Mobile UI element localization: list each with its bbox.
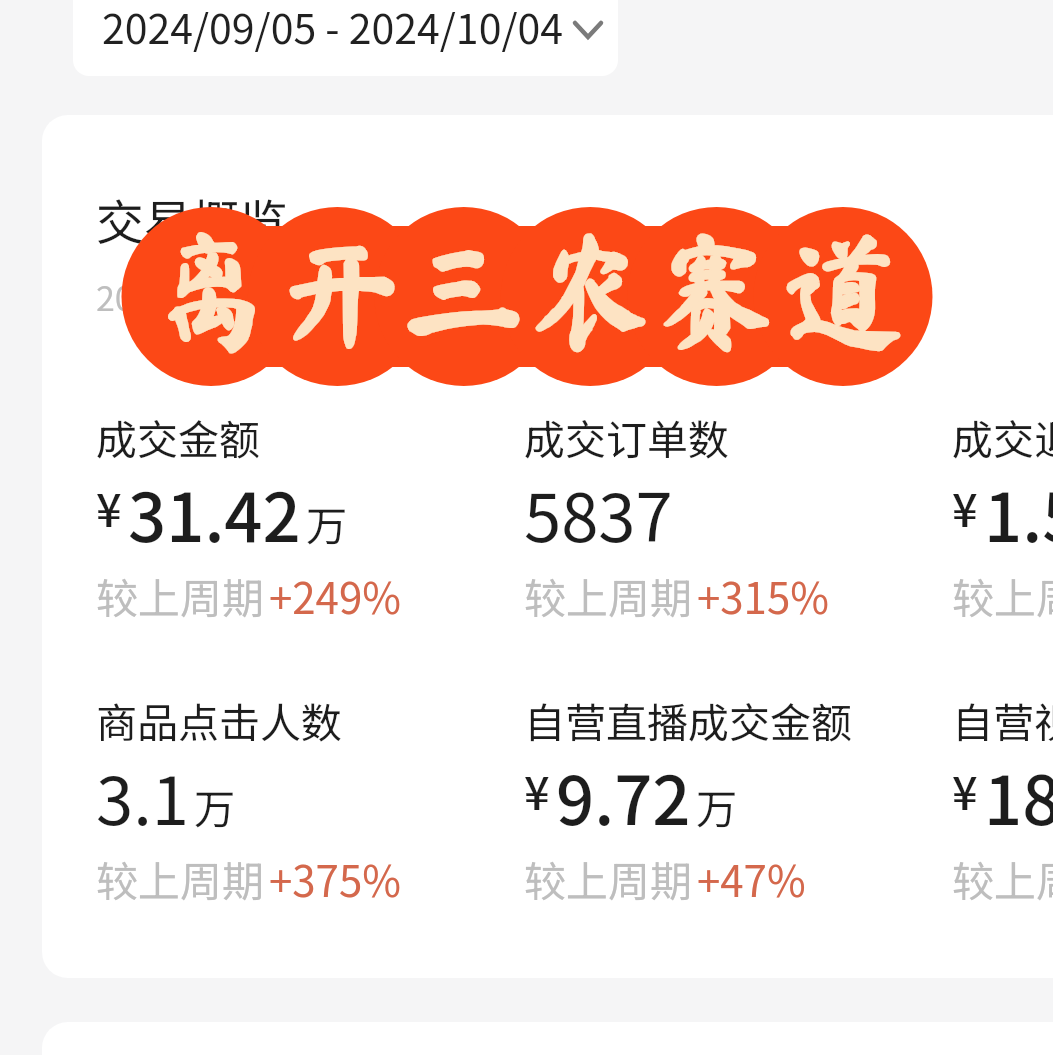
staticText: 5837 <box>524 464 673 561</box>
staticText: 3.1 <box>96 747 189 844</box>
staticText: 9.72 <box>556 747 691 844</box>
staticText: +47% <box>697 848 806 909</box>
staticText: 万 <box>696 776 737 835</box>
staticText: 31.42 <box>128 464 301 561</box>
button[interactable]: 自营视频成交金额 <box>952 690 1053 920</box>
staticText: 离 <box>149 227 274 352</box>
staticText: 成交订单数 <box>524 407 729 466</box>
staticText: ¥ <box>524 758 550 823</box>
staticText: 成交金额 <box>96 407 260 466</box>
staticText: 较上周期 <box>96 565 265 626</box>
staticText: 商品点击人数 <box>96 690 342 749</box>
staticText: 三 <box>401 227 526 352</box>
staticText: 离 <box>149 227 274 352</box>
staticText: ¥ <box>96 475 122 540</box>
staticText: 万 <box>306 493 347 552</box>
staticText: +375% <box>269 848 401 909</box>
button[interactable]: 成交金额 <box>96 407 496 637</box>
staticText: 开 <box>275 227 400 352</box>
staticText: 较上周期 <box>952 848 1053 909</box>
staticText: 较上周期 <box>96 848 265 909</box>
staticText: 三 <box>401 227 526 352</box>
button[interactable]: 自营直播成交金额 <box>524 690 924 920</box>
staticText: 农 <box>528 227 653 352</box>
button[interactable]: 成交退款金额 <box>952 407 1053 637</box>
button[interactable]: Select date range <box>73 0 618 76</box>
staticText: 18.2 <box>984 747 1053 844</box>
staticText: 道 <box>781 227 906 352</box>
staticText: 赛 <box>654 227 779 352</box>
button[interactable]: 商品点击人数 <box>96 690 496 920</box>
staticText: 较上周期 <box>524 848 693 909</box>
staticText: 1.53 <box>984 464 1053 561</box>
staticText: 道 <box>781 227 906 352</box>
staticText: 万 <box>194 776 235 835</box>
staticText: 交易概览 <box>96 184 289 254</box>
staticText: 较上周期 <box>524 565 693 626</box>
staticText: 赛 <box>654 227 779 352</box>
staticText: ¥ <box>952 475 978 540</box>
staticText: 较上周期 <box>952 565 1053 626</box>
staticText: 2024/09/05 - 2024/10/04 <box>102 0 563 55</box>
staticText: 开 <box>275 227 400 352</box>
staticText: 农 <box>528 227 653 352</box>
staticText: +249% <box>269 565 401 626</box>
staticText: 自营视频成交金额 <box>952 690 1053 749</box>
staticText: 2024/09/05 - 2024/10/04 <box>96 272 479 321</box>
staticText: ¥ <box>952 758 978 823</box>
staticText: +315% <box>697 565 829 626</box>
staticText: 成交退款金额 <box>952 407 1053 466</box>
staticText: 自营直播成交金额 <box>524 690 852 749</box>
button[interactable]: 成交订单数 <box>524 407 924 637</box>
